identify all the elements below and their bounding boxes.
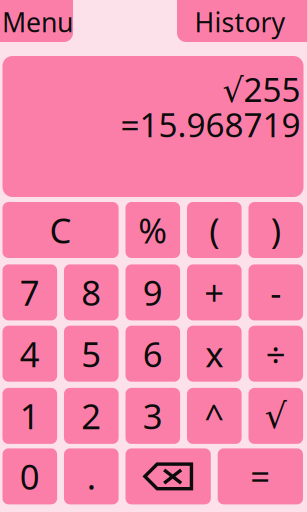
button[interactable]: 7 xyxy=(2,264,57,320)
button[interactable]: History xyxy=(0,0,307,42)
staticText: 7 xyxy=(20,269,40,315)
staticText: 6 xyxy=(143,331,163,377)
button[interactable]: = xyxy=(218,448,303,504)
staticText: = xyxy=(250,453,270,499)
button[interactable]: Backspace xyxy=(125,448,211,504)
staticText: 5 xyxy=(81,331,101,377)
staticText: . xyxy=(87,453,96,499)
button[interactable]: . xyxy=(64,448,119,504)
staticText: ÷ xyxy=(266,331,286,377)
staticText: 3 xyxy=(143,393,163,439)
button[interactable]: + xyxy=(187,264,242,320)
button[interactable]: 1 xyxy=(2,388,57,444)
staticText: Menu xyxy=(2,4,73,40)
staticText: 1 xyxy=(20,393,40,439)
button[interactable]: 5 xyxy=(64,326,119,382)
button[interactable]: ) xyxy=(248,202,303,258)
button[interactable]: 8 xyxy=(64,264,119,320)
staticText: 2 xyxy=(81,393,101,439)
button[interactable]: √ xyxy=(248,388,303,444)
staticText: ) xyxy=(271,207,281,253)
button[interactable]: 4 xyxy=(2,326,57,382)
staticText: 0 xyxy=(20,453,40,499)
button[interactable]: 0 xyxy=(2,448,57,504)
staticText: x xyxy=(205,331,223,377)
staticText: √255 xyxy=(222,67,300,111)
staticText: 4 xyxy=(20,331,40,377)
staticText: - xyxy=(270,269,281,315)
button[interactable]: 6 xyxy=(125,326,180,382)
staticText: =15.968719 xyxy=(120,102,300,147)
staticText: 9 xyxy=(143,269,163,315)
button[interactable]: 9 xyxy=(125,264,180,320)
button[interactable]: 2 xyxy=(64,388,119,444)
staticText: History xyxy=(194,4,285,40)
button[interactable]: ÷ xyxy=(248,326,303,382)
button[interactable]: 3 xyxy=(125,388,180,444)
button[interactable]: ^ xyxy=(187,388,242,444)
staticText: √ xyxy=(265,396,287,435)
staticText: + xyxy=(204,269,224,315)
button[interactable]: Menu xyxy=(0,0,73,42)
button[interactable]: ( xyxy=(187,202,242,258)
staticText: ^ xyxy=(204,393,224,439)
button[interactable]: - xyxy=(248,264,303,320)
staticText: 8 xyxy=(81,269,101,315)
staticText: C xyxy=(50,207,72,253)
staticText: ( xyxy=(209,207,219,253)
staticText: % xyxy=(138,207,167,253)
button[interactable]: % xyxy=(125,202,180,258)
button[interactable]: x xyxy=(187,326,242,382)
button[interactable]: C xyxy=(2,202,119,258)
